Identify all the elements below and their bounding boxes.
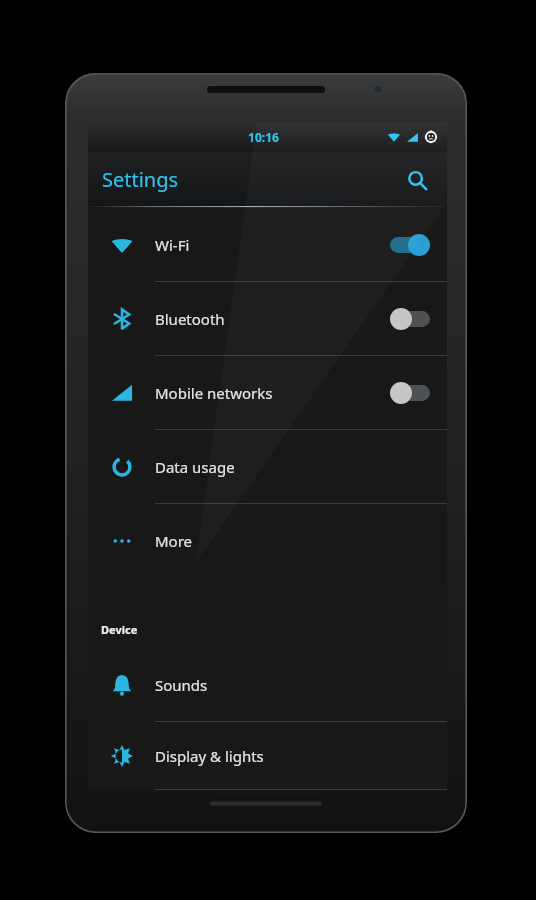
staticText: Settings bbox=[102, 166, 179, 193]
button[interactable]: Sounds bbox=[88, 648, 447, 722]
button[interactable]: Data usage bbox=[88, 430, 447, 504]
staticText: Device bbox=[101, 622, 138, 637]
staticText: Bluetooth bbox=[155, 309, 387, 329]
button[interactable]: Wi-Fi toggle bbox=[387, 228, 433, 262]
button[interactable]: Search bbox=[395, 158, 439, 202]
button[interactable]: Mobile networks bbox=[88, 356, 447, 430]
button[interactable]: Display & lights bbox=[88, 722, 447, 790]
staticText: Wi-Fi bbox=[155, 235, 387, 255]
staticText: Data usage bbox=[155, 457, 433, 477]
staticText: Sounds bbox=[155, 675, 433, 695]
button[interactable]: Bluetooth bbox=[88, 282, 447, 356]
staticText: Mobile networks bbox=[155, 383, 387, 403]
staticText: More bbox=[155, 531, 433, 551]
button[interactable]: Bluetooth toggle bbox=[387, 302, 433, 336]
button[interactable]: Wi-Fi bbox=[88, 208, 447, 282]
button[interactable]: More bbox=[88, 504, 447, 578]
staticText: Display & lights bbox=[155, 746, 433, 766]
staticText: 10:16 bbox=[248, 129, 279, 145]
button[interactable]: Mobile networks toggle bbox=[387, 376, 433, 410]
